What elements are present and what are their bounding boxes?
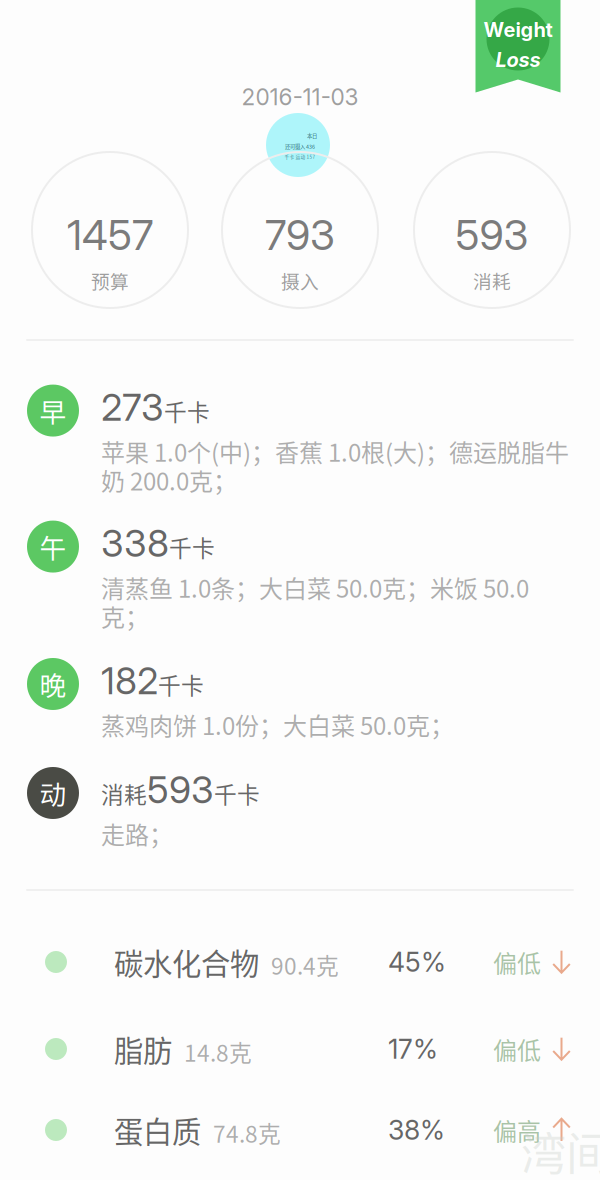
button[interactable]: 碳水化合物 bbox=[0, 926, 600, 998]
button[interactable]: 晚 bbox=[0, 649, 600, 739]
staticText: 湾间 bbox=[521, 1118, 600, 1180]
staticText: 千卡 运动 157 bbox=[284, 153, 315, 160]
staticText: 偏低 bbox=[493, 1032, 541, 1066]
staticText: 早 bbox=[39, 391, 66, 430]
button[interactable]: 1457 bbox=[31, 151, 189, 309]
staticText: 千卡 bbox=[164, 394, 210, 427]
staticText: 14.8克 bbox=[184, 1035, 252, 1068]
staticText: 45% bbox=[388, 946, 446, 978]
staticText: 182 bbox=[101, 658, 158, 703]
button[interactable]: 今日摄入 bbox=[266, 113, 330, 177]
staticText: 千卡 bbox=[158, 668, 204, 701]
staticText: 38% bbox=[388, 1114, 445, 1146]
staticText: Loss bbox=[495, 48, 540, 72]
button[interactable]: 593 bbox=[413, 151, 571, 309]
staticText: 动 bbox=[39, 774, 66, 812]
staticText: 74.8克 bbox=[213, 1116, 281, 1149]
button[interactable]: 早 bbox=[0, 376, 600, 494]
staticText: 偏高 bbox=[493, 1113, 541, 1147]
staticText: 摄入 bbox=[281, 267, 319, 294]
button[interactable]: 午 bbox=[0, 512, 600, 630]
staticText: 蒸鸡肉饼 1.0份；大白菜 50.0克； bbox=[101, 710, 454, 739]
button[interactable]: 蛋白质 bbox=[0, 1094, 600, 1166]
staticText: 本日 bbox=[307, 132, 317, 140]
button[interactable]: Weight Loss bbox=[475, 0, 560, 92]
button[interactable]: 2016-11-03 bbox=[241, 83, 358, 111]
staticText: 338 bbox=[101, 521, 169, 566]
staticText: 偏低 bbox=[493, 945, 541, 979]
staticText: Weight bbox=[483, 17, 552, 42]
staticText: 17% bbox=[388, 1033, 438, 1065]
staticText: 晚 bbox=[39, 665, 66, 703]
staticText: 793 bbox=[265, 210, 335, 260]
staticText: 273 bbox=[101, 385, 164, 430]
staticText: 千卡 bbox=[214, 777, 260, 810]
staticText: 1457 bbox=[67, 210, 153, 260]
staticText: 2016-11-03 bbox=[241, 83, 358, 111]
staticText: 碳水化合物 bbox=[114, 941, 259, 983]
staticText: 脂肪 bbox=[114, 1028, 172, 1070]
staticText: 午 bbox=[39, 527, 66, 566]
staticText: 593 bbox=[455, 210, 528, 260]
button[interactable]: 793 bbox=[221, 151, 379, 309]
staticText: 90.4克 bbox=[271, 948, 339, 981]
staticText: 蛋白质 bbox=[114, 1109, 201, 1151]
button[interactable]: 动 bbox=[0, 758, 600, 848]
staticText: 消耗 bbox=[101, 777, 147, 810]
staticText: 593 bbox=[147, 767, 214, 812]
staticText: 还可摄入 436 bbox=[285, 143, 315, 150]
staticText: 苹果 1.0个(中)；香蕉 1.0根(大)；德运脱脂牛奶 200.0克； bbox=[101, 437, 569, 494]
staticText: 千卡 bbox=[169, 530, 215, 563]
staticText: 清蒸鱼 1.0条；大白菜 50.0克；米饭 50.0克； bbox=[101, 573, 529, 630]
button[interactable]: 脂肪 bbox=[0, 1013, 600, 1085]
staticText: 消耗 bbox=[473, 267, 511, 294]
staticText: 走路； bbox=[101, 819, 173, 848]
staticText: 预算 bbox=[91, 267, 129, 294]
